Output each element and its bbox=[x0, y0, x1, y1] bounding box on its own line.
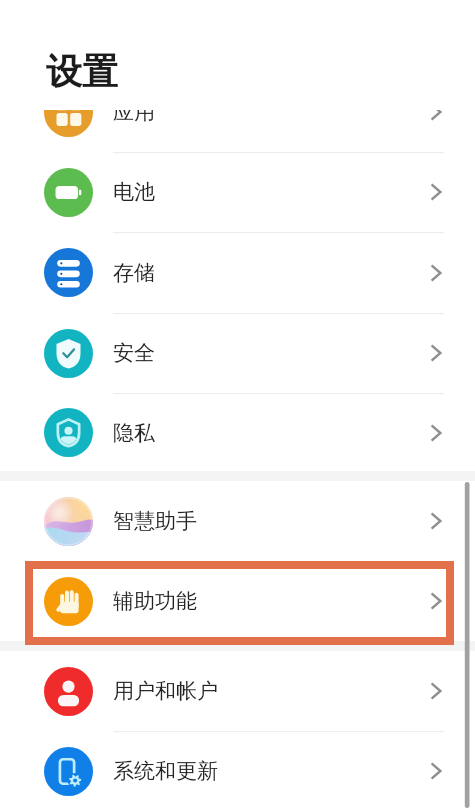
staticText: 用户和帐户 bbox=[113, 678, 218, 704]
button[interactable]: 辅助功能 bbox=[0, 561, 475, 641]
staticText: 存储 bbox=[113, 260, 155, 286]
staticText: 智慧助手 bbox=[113, 508, 197, 534]
button[interactable]: 电池 bbox=[0, 152, 475, 232]
button[interactable]: 系统和更新 bbox=[0, 731, 475, 808]
staticText: 电池 bbox=[113, 179, 155, 205]
button[interactable]: 隐私 bbox=[0, 393, 475, 472]
button[interactable]: 应用 bbox=[0, 110, 475, 152]
staticText: 隐私 bbox=[113, 420, 155, 446]
button[interactable]: 智慧助手 bbox=[0, 481, 475, 561]
staticText: 设置 bbox=[46, 49, 118, 94]
staticText: 辅助功能 bbox=[113, 588, 197, 614]
button[interactable]: 存储 bbox=[0, 232, 475, 313]
staticText: 应用 bbox=[113, 110, 155, 125]
button[interactable]: 安全 bbox=[0, 313, 475, 393]
button[interactable]: 用户和帐户 bbox=[0, 651, 475, 731]
staticText: 系统和更新 bbox=[113, 758, 218, 784]
staticText: 安全 bbox=[113, 340, 155, 366]
